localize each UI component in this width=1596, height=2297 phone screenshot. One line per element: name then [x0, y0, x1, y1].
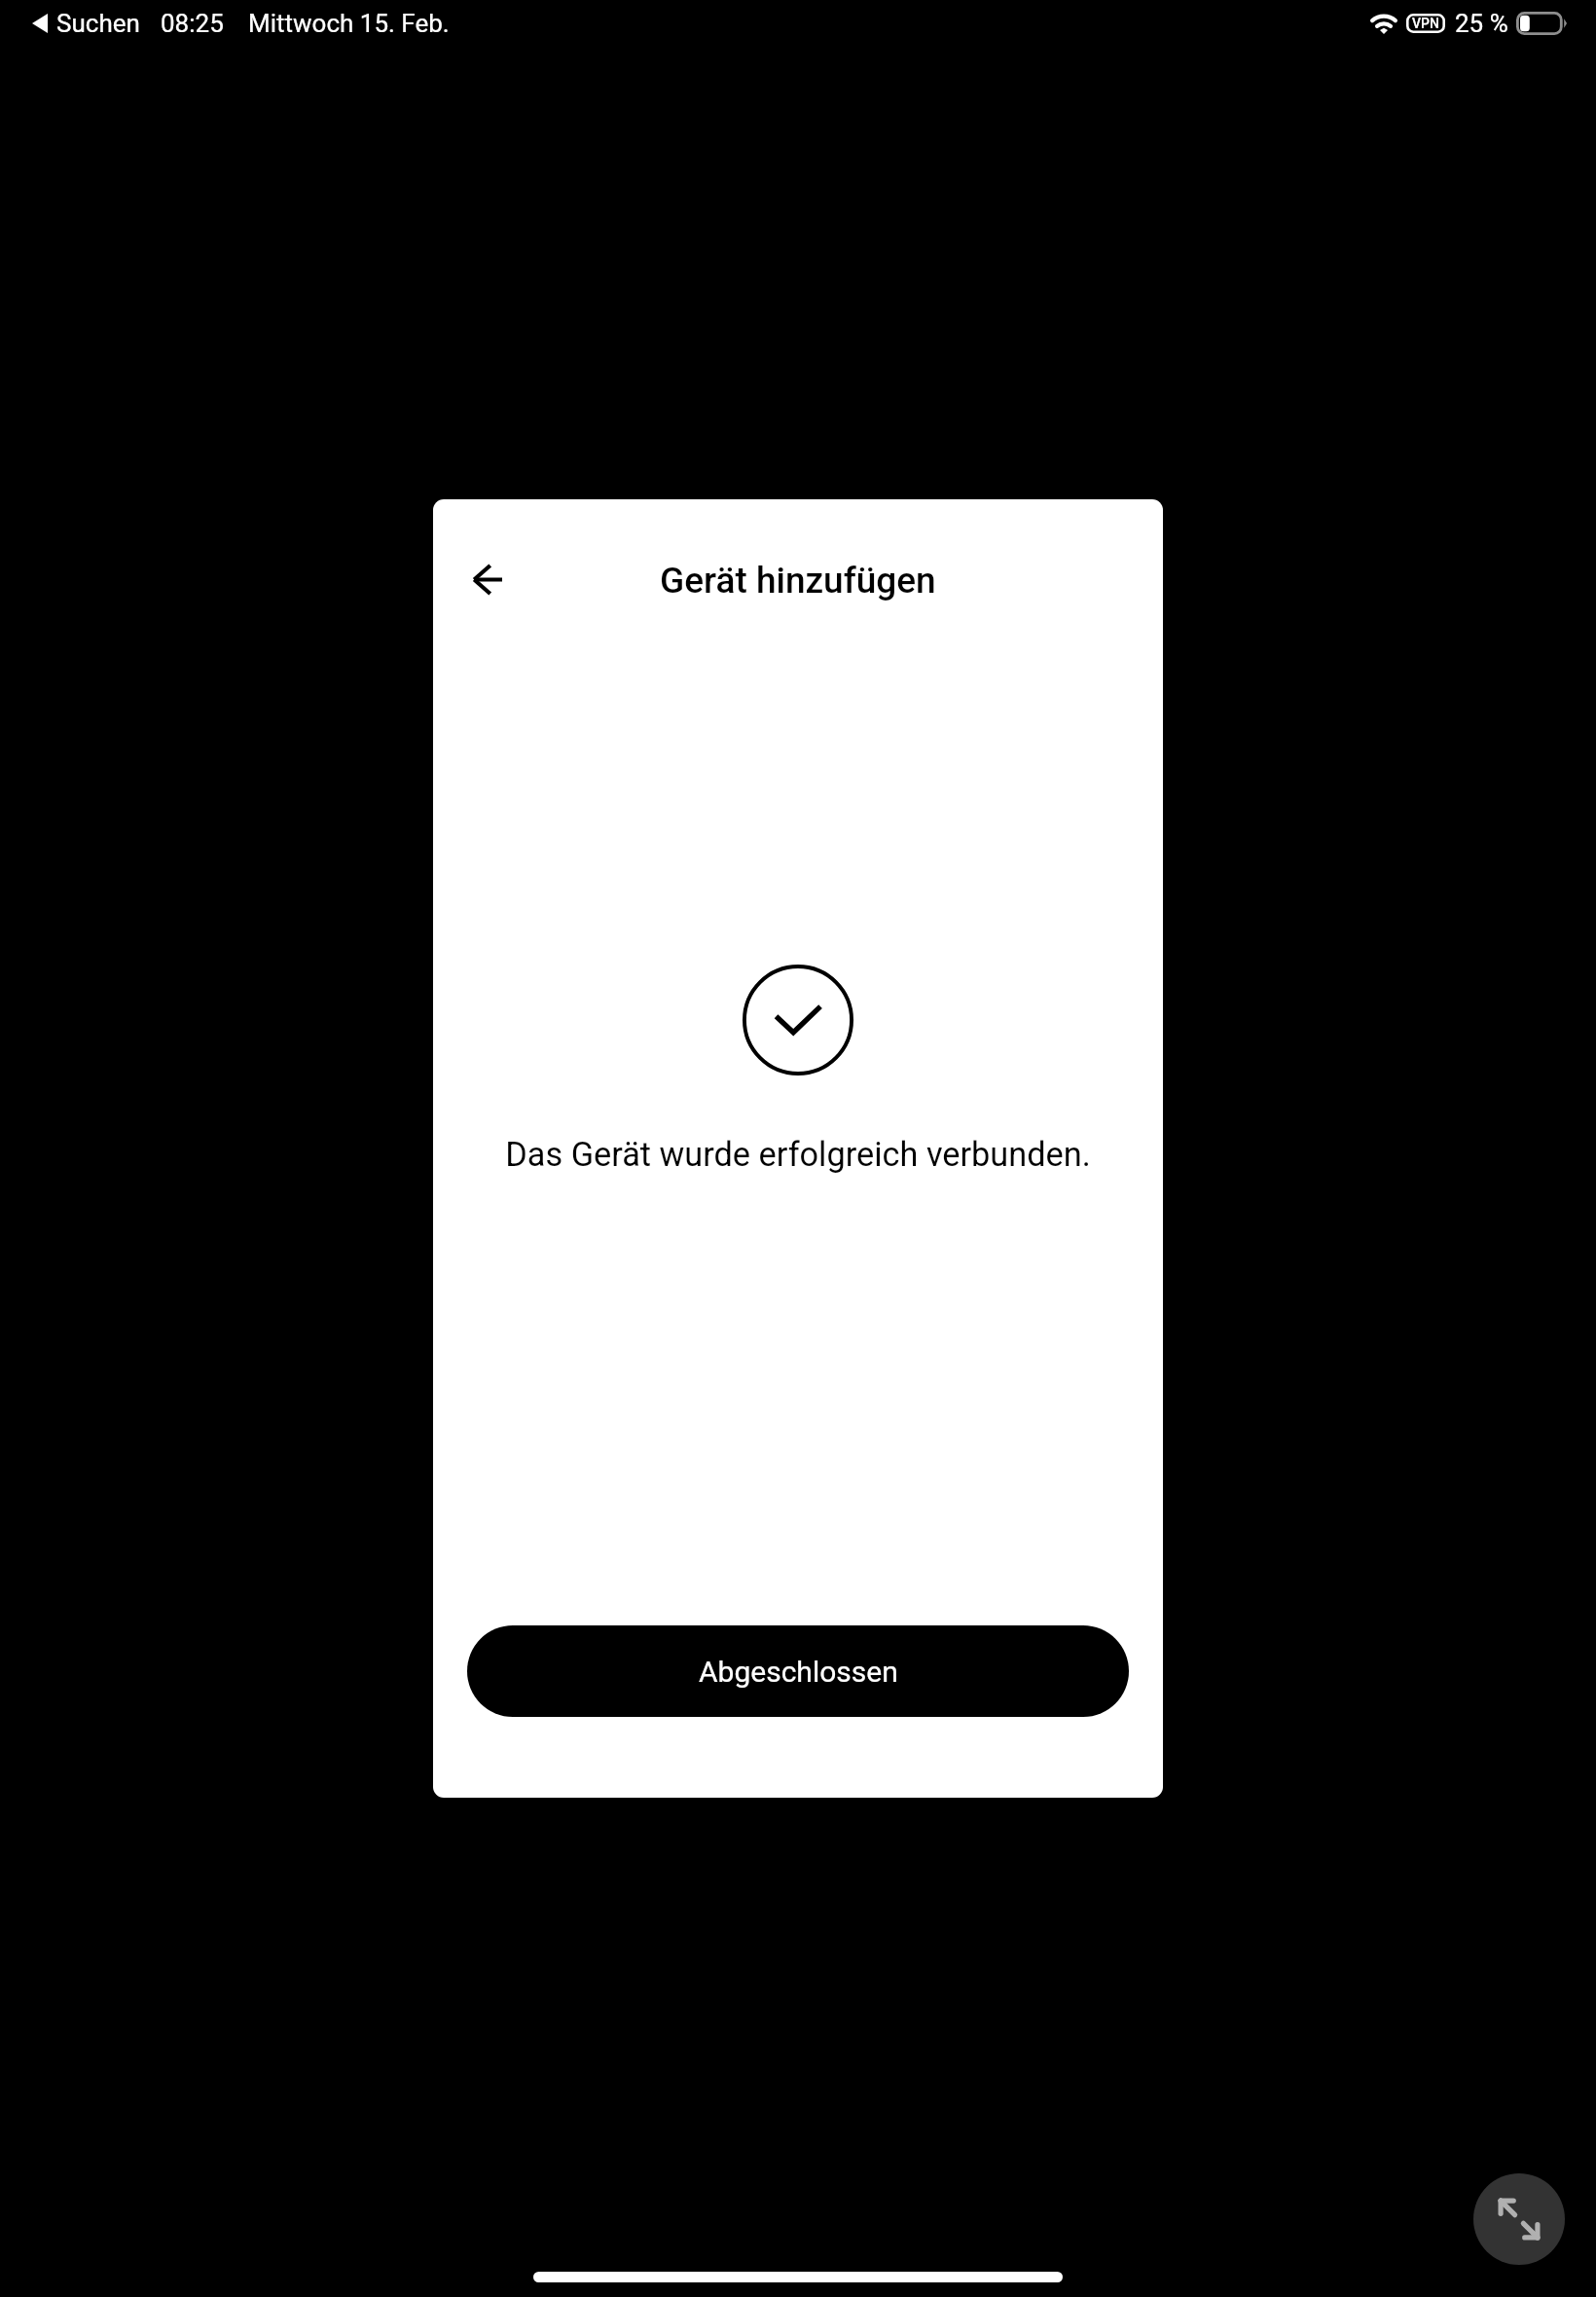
- staticText: 08:25: [161, 9, 224, 38]
- staticText: Suchen: [56, 9, 140, 38]
- staticText: Das Gerät wurde erfolgreich verbunden.: [505, 1135, 1091, 1174]
- staticText: Mittwoch 15. Feb.: [248, 9, 450, 38]
- button[interactable]: Abgeschlossen: [467, 1625, 1129, 1717]
- button[interactable]: Zurück: [449, 540, 526, 618]
- button[interactable]: Vollbild: [1473, 2173, 1565, 2265]
- staticText: 25 %: [1455, 9, 1508, 38]
- staticText: Abgeschlossen: [699, 1655, 898, 1689]
- staticText: Gerät hinzufügen: [660, 560, 936, 602]
- staticText: VPN: [1412, 16, 1439, 31]
